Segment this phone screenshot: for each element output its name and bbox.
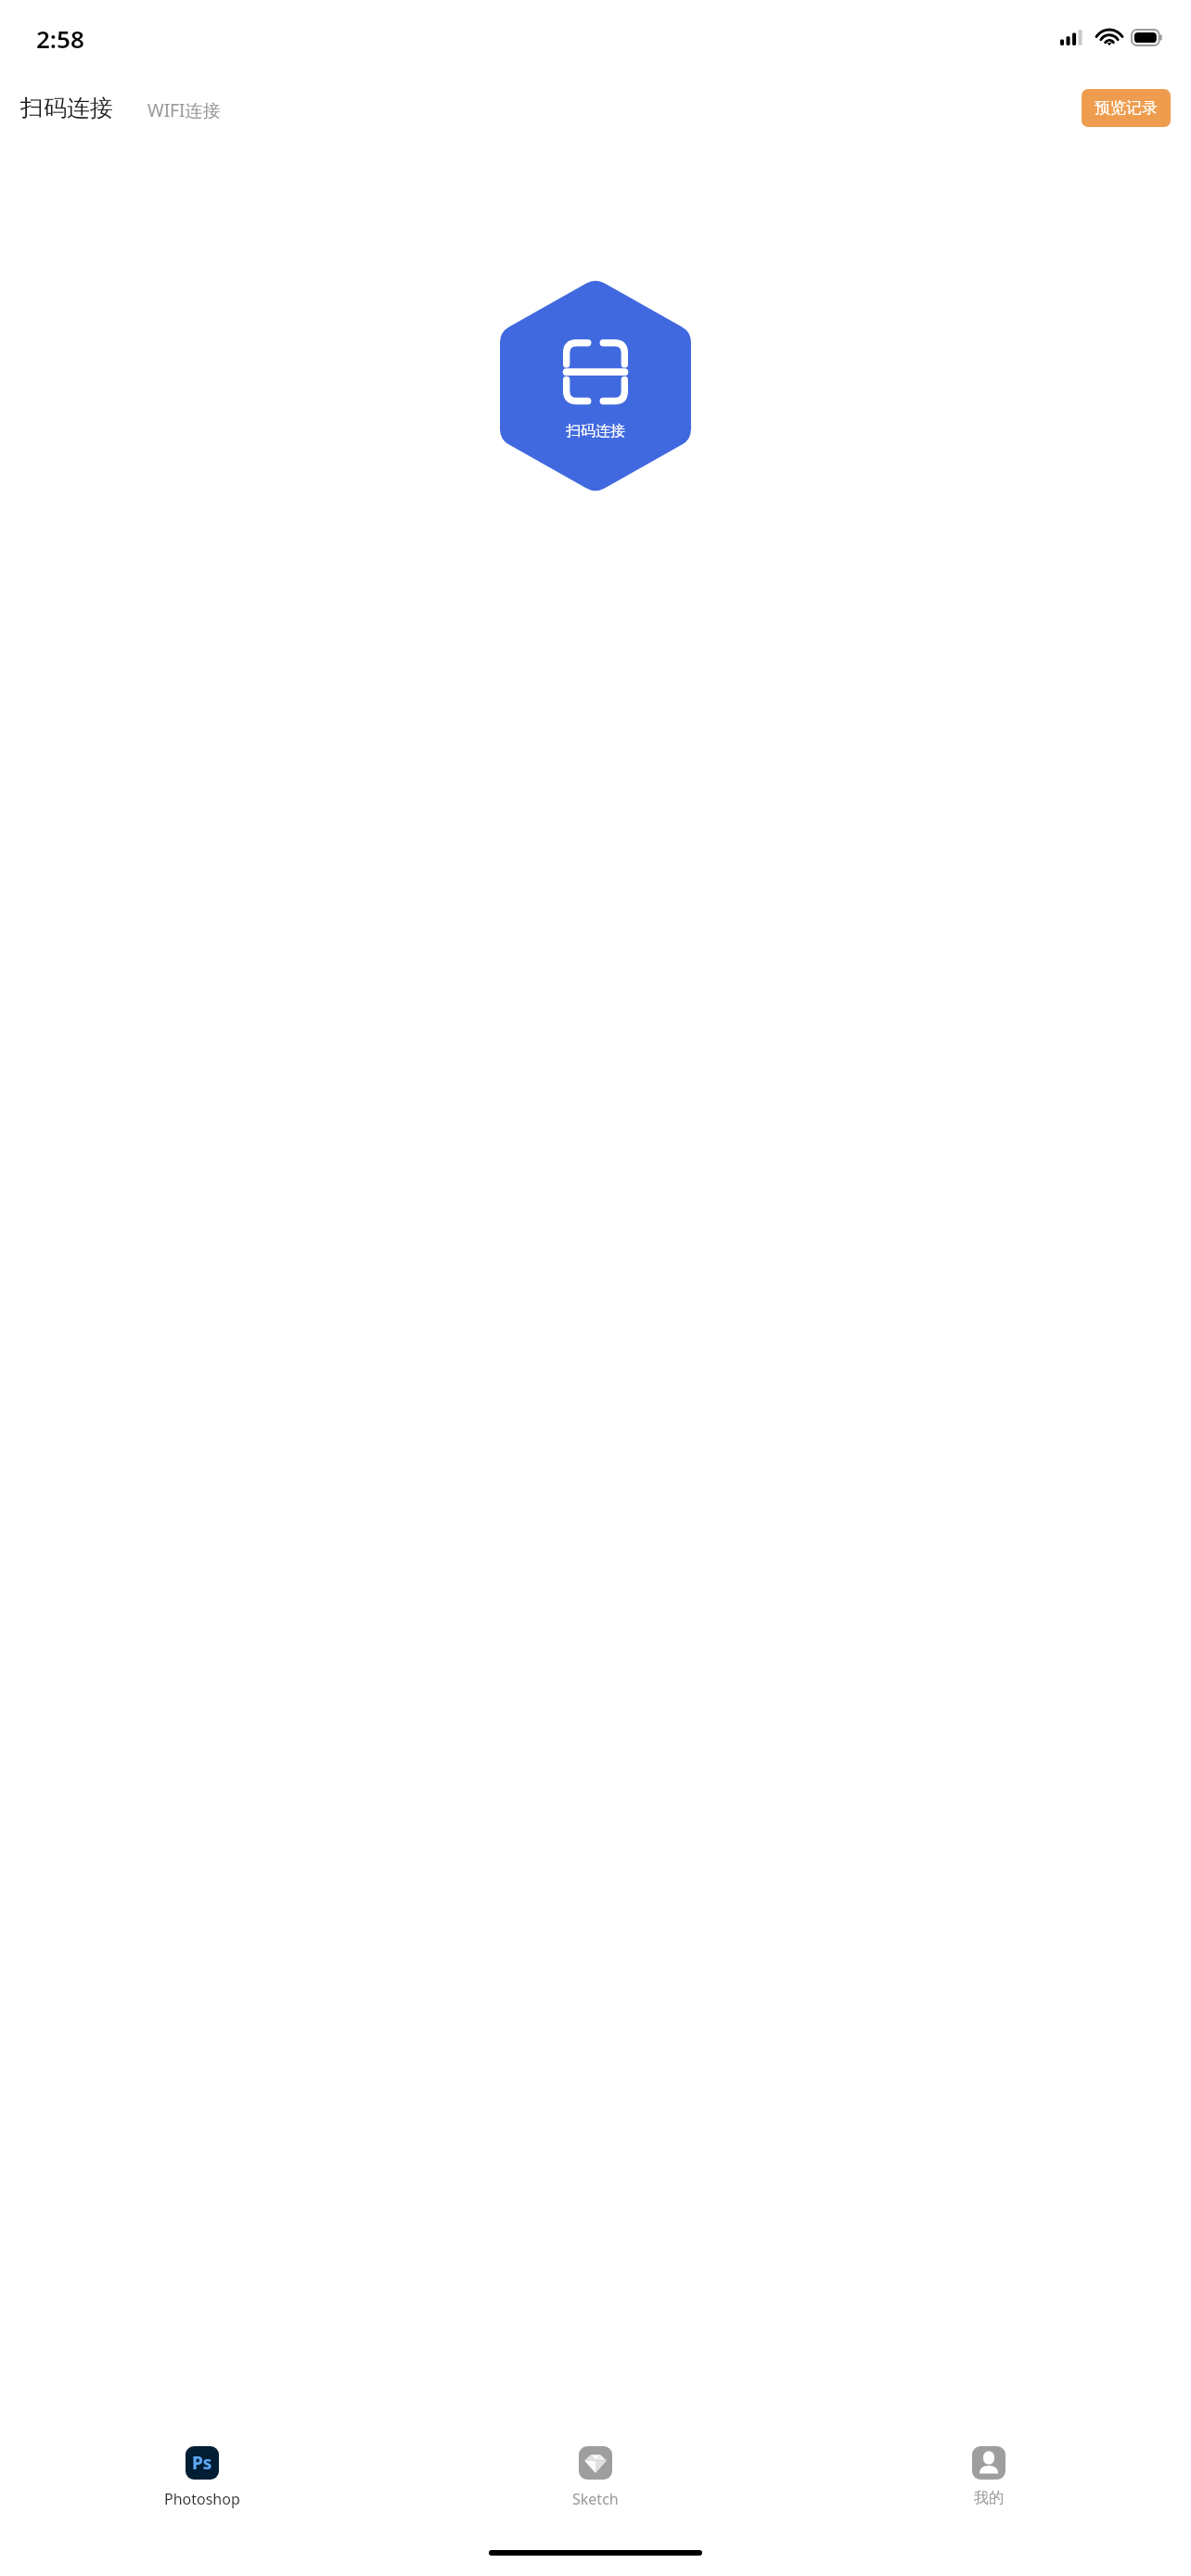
button[interactable]: Photoshop [6,2436,399,2543]
button[interactable]: 扫码连接 [500,278,691,493]
staticText: Photoshop [164,2489,240,2509]
button[interactable]: 扫码连接 [12,88,122,128]
staticText: WIFI连接 [147,98,221,122]
button[interactable]: Sketch [399,2436,792,2543]
staticText: 2:58 [36,22,84,55]
staticText: 扫码连接 [20,94,113,122]
button[interactable]: 预览记录 [1082,89,1171,127]
staticText: Sketch [572,2489,619,2509]
button[interactable]: WIFI连接 [139,93,229,128]
staticText: 我的 [974,2489,1004,2507]
staticText: 扫码连接 [566,422,625,440]
staticText: 预览记录 [1095,98,1158,118]
other: Sketch [579,2446,612,2480]
button[interactable]: 我的 [792,2436,1185,2543]
staticText: Ps [192,2451,212,2475]
other: 我的 [972,2446,1005,2480]
other: Photoshop [186,2446,219,2480]
